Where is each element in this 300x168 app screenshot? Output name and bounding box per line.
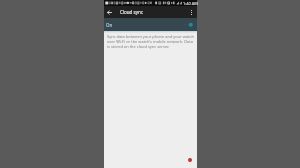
staticText: 1:40 AM [183,1,198,6]
staticText: Sync data between your phone and your wa… [107,34,195,49]
staticText: Cloud sync [120,9,144,15]
button[interactable]: On [104,18,197,31]
button[interactable]: More options [186,7,197,18]
button[interactable]: Navigate up [103,6,115,18]
staticText: On [106,22,113,28]
